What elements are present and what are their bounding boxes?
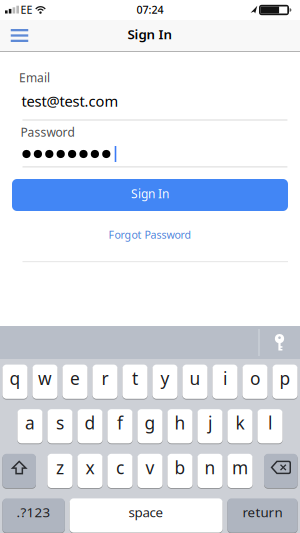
staticText: v (145, 456, 154, 479)
staticText: i (223, 367, 227, 390)
staticText: l (268, 411, 272, 434)
staticText: w (38, 367, 52, 390)
staticText: d (84, 411, 95, 434)
button[interactable]: o (242, 364, 268, 399)
button[interactable]: c (107, 453, 133, 488)
staticText: j (208, 411, 212, 434)
button[interactable]: m (227, 453, 253, 488)
staticText: y (160, 367, 169, 390)
button[interactable]: Delete (264, 453, 298, 488)
staticText: Email (19, 69, 50, 85)
staticText: t (132, 367, 138, 390)
staticText: x (85, 456, 94, 479)
staticText: test@test.com (21, 91, 118, 111)
button[interactable]: u (182, 364, 208, 399)
staticText: return (242, 503, 282, 521)
button[interactable]: b (167, 453, 193, 488)
staticText: k (235, 411, 244, 434)
staticText: s (56, 411, 64, 434)
staticText: Password (20, 124, 74, 140)
staticText: .?123 (17, 503, 51, 521)
button[interactable]: p (272, 364, 298, 399)
button[interactable]: k (227, 409, 253, 444)
staticText: u (189, 367, 200, 390)
staticText: c (116, 456, 124, 479)
staticText: EE (20, 2, 32, 17)
button[interactable]: f (107, 409, 133, 444)
button[interactable]: Sign In (12, 179, 288, 211)
button[interactable]: r (92, 364, 118, 399)
button[interactable]: z (47, 453, 73, 488)
button[interactable]: w (32, 364, 58, 399)
staticText: Sign In (127, 25, 172, 43)
staticText: q (9, 367, 20, 390)
button[interactable]: space (70, 498, 223, 533)
staticText: a (25, 411, 35, 434)
staticText: o (250, 367, 260, 390)
staticText: n (204, 456, 215, 479)
staticText: m (232, 456, 248, 479)
button[interactable]: .?123 (2, 498, 65, 533)
button[interactable]: h (167, 409, 193, 444)
staticText: f (117, 411, 123, 434)
button[interactable]: j (197, 409, 223, 444)
button[interactable]: t (122, 364, 148, 399)
staticText: e (70, 367, 80, 390)
staticText: Forgot Password (108, 227, 191, 242)
button[interactable]: s (47, 409, 73, 444)
button[interactable]: v (137, 453, 163, 488)
staticText: h (174, 411, 185, 434)
staticText: g (144, 411, 155, 434)
button[interactable]: Passwords (259, 326, 299, 359)
button[interactable]: y (152, 364, 178, 399)
button[interactable]: Shift (2, 453, 36, 488)
button[interactable]: n (197, 453, 223, 488)
staticText: r (101, 367, 108, 390)
button[interactable]: x (77, 453, 103, 488)
button[interactable]: Forgot Password (80, 224, 220, 244)
button[interactable]: return (227, 498, 298, 533)
button[interactable]: g (137, 409, 163, 444)
staticText: Sign In (131, 185, 169, 201)
button[interactable]: l (257, 409, 283, 444)
staticText: p (279, 367, 290, 390)
button[interactable]: i (212, 364, 238, 399)
staticText: 07:24 (136, 2, 163, 17)
staticText: b (174, 456, 185, 479)
button[interactable]: Menu (5, 22, 33, 48)
button[interactable]: q (2, 364, 28, 399)
button[interactable]: e (62, 364, 88, 399)
staticText: space (129, 503, 164, 521)
staticText: z (56, 456, 64, 479)
button[interactable]: d (77, 409, 103, 444)
button[interactable]: a (17, 409, 43, 444)
